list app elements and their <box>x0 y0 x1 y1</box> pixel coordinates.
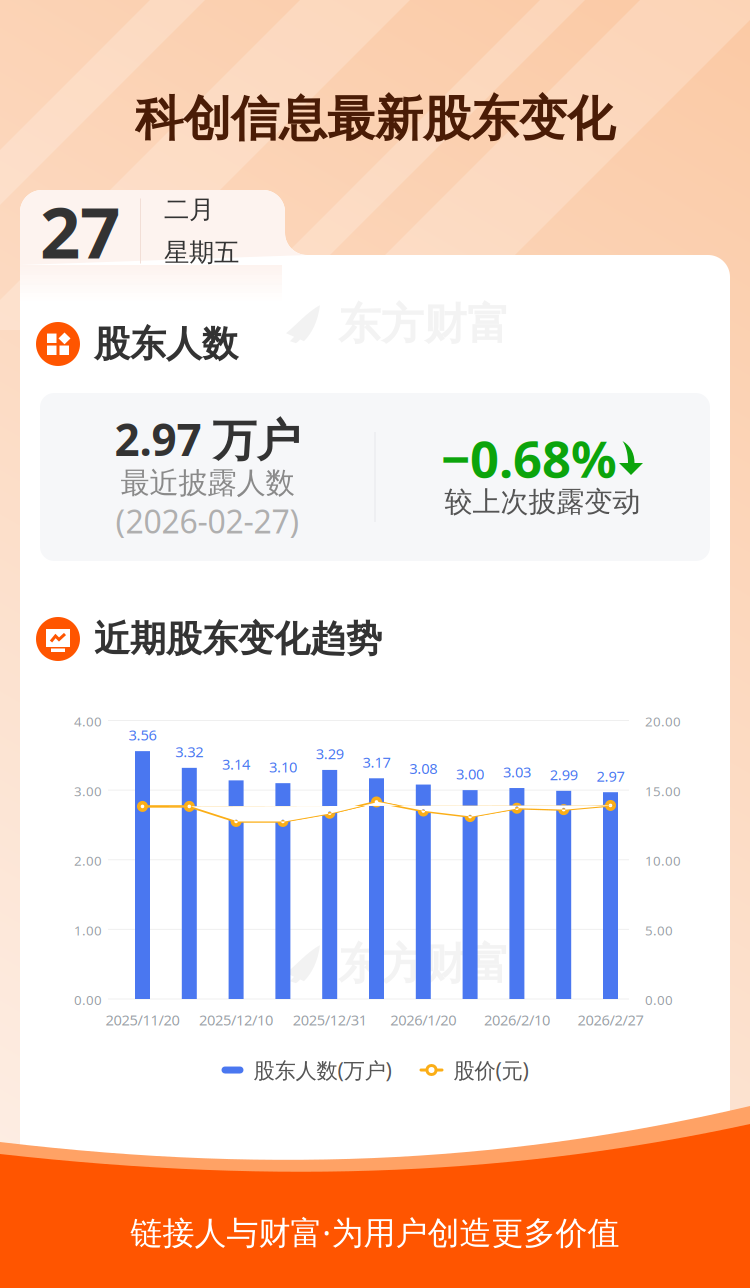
staticText: 20.00 <box>645 712 681 730</box>
staticText: 较上次披露变动 <box>444 485 640 519</box>
staticText: 2025/12/10 <box>199 1010 273 1029</box>
staticText: 3.03 <box>503 762 531 781</box>
staticText: 0.00 <box>645 991 673 1009</box>
staticText: 2026/2/27 <box>577 1010 643 1029</box>
staticText: 最近披露人数 <box>120 465 294 501</box>
staticText: 2.00 <box>74 852 102 869</box>
staticText: 3.32 <box>175 742 203 761</box>
staticText: 二月 <box>164 194 214 225</box>
staticText: 15.00 <box>645 782 681 800</box>
staticText: 2026/2/10 <box>484 1010 550 1029</box>
staticText: 1.00 <box>74 921 102 939</box>
staticText: 2025/11/20 <box>105 1010 179 1029</box>
staticText: 3.29 <box>316 744 344 763</box>
staticText: 4.00 <box>74 712 102 730</box>
staticText: 27 <box>40 184 120 278</box>
staticText: 2.97 万户 <box>114 410 300 468</box>
staticText: 5.00 <box>645 921 673 939</box>
staticText: 0.00 <box>74 991 102 1009</box>
staticText: 2.99 <box>550 765 578 784</box>
staticText: 星期五 <box>164 237 239 268</box>
staticText: 2025/12/31 <box>293 1010 367 1029</box>
staticText: 链接人与财富·为用户创造更多价值 <box>130 1211 619 1253</box>
staticText: 2.97 <box>596 766 624 786</box>
staticText: 3.10 <box>269 757 297 777</box>
staticText: (2026-02-27) <box>115 500 299 542</box>
staticText: 股东人数 <box>94 322 238 366</box>
staticText: 3.56 <box>128 725 156 745</box>
staticText: 3.08 <box>409 759 437 778</box>
staticText: 东方财富 <box>338 938 510 990</box>
staticText: 东方财富 <box>338 298 510 350</box>
staticText: 3.00 <box>74 782 102 800</box>
staticText: 3.17 <box>362 752 390 772</box>
staticText: 股东人数(万户) <box>253 1056 391 1084</box>
staticText: 2026/1/20 <box>390 1010 456 1029</box>
staticText: 10.00 <box>645 852 681 869</box>
staticText: 股价(元) <box>453 1056 528 1084</box>
staticText: −0.68% <box>441 424 617 492</box>
staticText: 科创信息最新股东变化 <box>135 89 615 148</box>
staticText: 3.00 <box>456 764 484 784</box>
staticText: 3.14 <box>222 754 250 774</box>
staticText: 近期股东变化趋势 <box>94 617 382 661</box>
